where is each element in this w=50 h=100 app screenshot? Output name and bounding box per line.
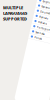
staticText: Svenska bbox=[33, 32, 42, 36]
staticText: Portugues bbox=[33, 27, 48, 31]
staticText: English bbox=[33, 1, 43, 4]
staticText: Deutsch bbox=[33, 11, 44, 15]
staticText: Polski bbox=[33, 38, 41, 41]
staticText: Espanol bbox=[33, 6, 43, 9]
button[interactable]: Portugues bbox=[27, 26, 50, 31]
button[interactable]: Espanol bbox=[27, 5, 50, 10]
staticText: Francais bbox=[33, 16, 42, 20]
button[interactable]: Polski bbox=[27, 37, 50, 42]
button[interactable]: Deutsch bbox=[27, 10, 50, 15]
staticText: MULTIPLE bbox=[3, 5, 23, 10]
button[interactable]: Svenska bbox=[27, 32, 50, 37]
staticText: Italiano bbox=[33, 22, 43, 25]
staticText: SUPPORTED bbox=[3, 16, 27, 21]
staticText: LANGUAGES bbox=[3, 11, 27, 16]
button[interactable]: Francais bbox=[27, 16, 50, 21]
button[interactable]: English bbox=[27, 0, 50, 5]
button[interactable]: Italiano bbox=[27, 21, 50, 26]
